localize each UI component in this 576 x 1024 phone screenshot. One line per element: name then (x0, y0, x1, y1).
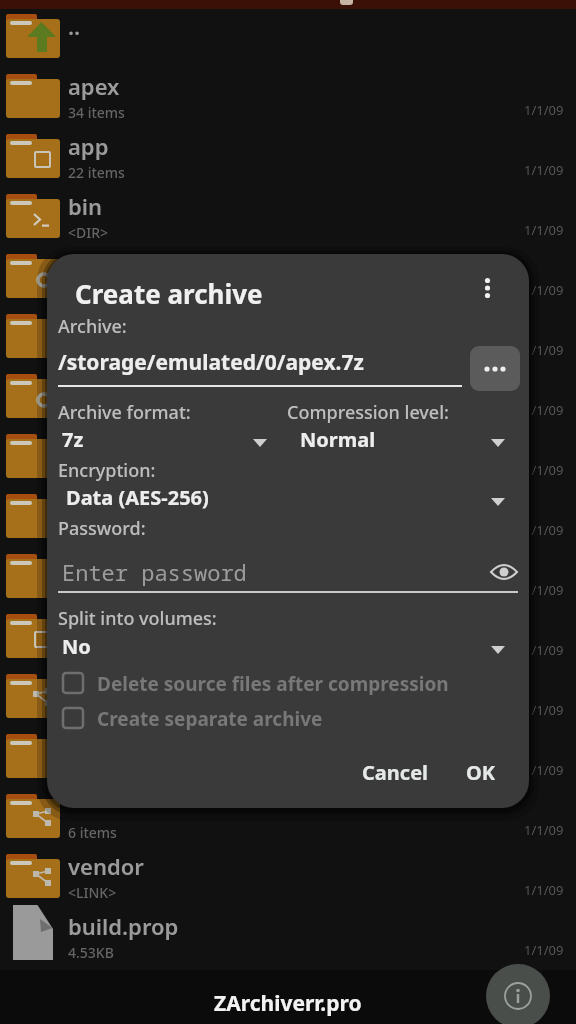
button[interactable] (474, 268, 506, 312)
button[interactable]: sdcard (0, 610, 576, 670)
staticText: proc (68, 551, 116, 581)
button[interactable] (58, 629, 518, 665)
button[interactable]: .. (0, 10, 576, 70)
staticText: <DIR> (68, 583, 109, 602)
staticText: Delete source files after compression (97, 671, 449, 695)
staticText: 1/1/09 (524, 581, 564, 599)
staticText: <DIR> (68, 343, 109, 362)
staticText: Cancel (362, 759, 429, 786)
staticText: apex (68, 71, 120, 101)
staticText: Password: (58, 516, 146, 541)
button[interactable]: Cancel (343, 748, 447, 796)
staticText: <LINK> (68, 883, 117, 902)
button[interactable]: etc (0, 370, 576, 430)
staticText: 34 items (68, 103, 125, 122)
staticText: system_ext (68, 791, 188, 821)
staticText: Encryption: (58, 458, 156, 483)
staticText: 1/1/09 (524, 401, 564, 419)
button[interactable] (58, 422, 278, 458)
staticText: Split into volumes: (58, 606, 217, 631)
staticText: 1/1/09 (524, 461, 564, 479)
staticText: .. (68, 11, 81, 41)
staticText: 1/1/09 (524, 701, 564, 719)
staticText: <DIR> (68, 223, 109, 242)
staticText: Compression level: (287, 400, 449, 425)
staticText: 1/1/09 (524, 941, 564, 959)
staticText: <DIR> (68, 403, 109, 422)
button[interactable] (58, 480, 518, 516)
staticText: Archive format: (58, 400, 191, 425)
button[interactable]: dev (0, 310, 576, 370)
staticText: <DIR> (68, 523, 109, 542)
button[interactable]: apex (0, 70, 576, 130)
staticText: sys (68, 671, 102, 701)
button[interactable]: Enter password (62, 557, 247, 587)
staticText: app (68, 131, 109, 161)
staticText: dev (68, 311, 107, 341)
button[interactable]: Normal (300, 426, 376, 453)
button[interactable]: mnt (0, 430, 576, 490)
button[interactable]: app (0, 130, 576, 190)
staticText: 1/1/09 (524, 881, 564, 899)
button[interactable]: sys (0, 670, 576, 730)
staticText: data (68, 251, 117, 281)
staticText: 1/1/09 (524, 281, 564, 299)
button[interactable] (293, 422, 518, 458)
button[interactable]: 7z (62, 426, 84, 453)
staticText: 6 items (68, 823, 117, 842)
button[interactable]: system (0, 730, 576, 790)
staticText: 1/1/09 (524, 341, 564, 359)
button[interactable]: ZArchiverr.pro (0, 970, 576, 1024)
staticText: sdcard (68, 611, 140, 641)
staticText: <DIR> (68, 703, 109, 722)
button[interactable]: Create separate archive (62, 706, 323, 730)
button[interactable]: system_ext (0, 790, 576, 850)
staticText: OK (466, 759, 496, 786)
staticText: 1/1/09 (524, 221, 564, 239)
staticText: etc (68, 371, 101, 401)
button[interactable]: Data (AES-256) (66, 484, 209, 511)
staticText: vendor (68, 851, 144, 881)
button[interactable]: build.prop (0, 910, 576, 970)
button[interactable]: proc (0, 550, 576, 610)
staticText: odm (68, 491, 117, 521)
staticText: <DIR> (68, 463, 109, 482)
staticText: <DIR> (68, 643, 109, 662)
button[interactable]: OK (445, 748, 517, 796)
staticText: <DIR> (68, 283, 109, 302)
button[interactable]: No (62, 633, 91, 660)
staticText: 1/1/09 (524, 521, 564, 539)
staticText: 1/1/09 (524, 101, 564, 119)
staticText: 1/1/09 (524, 161, 564, 179)
button[interactable] (486, 964, 550, 1024)
staticText: mnt (68, 431, 113, 461)
staticText: 1/1/09 (524, 761, 564, 779)
button[interactable]: Delete source files after compression (62, 671, 449, 695)
staticText: /storage/emulated/0/apex.7z (58, 348, 364, 377)
staticText: Create separate archive (97, 706, 323, 730)
staticText: 4.53KB (68, 943, 114, 962)
button[interactable] (470, 346, 520, 391)
button[interactable]: data (0, 250, 576, 310)
staticText: Archive: (58, 314, 127, 339)
staticText: 1/1/09 (524, 641, 564, 659)
button[interactable] (483, 552, 525, 592)
staticText: bin (68, 191, 103, 221)
button[interactable]: bin (0, 190, 576, 250)
button[interactable]: odm (0, 490, 576, 550)
staticText: ZArchiverr.pro (214, 989, 362, 1018)
staticText: build.prop (68, 911, 179, 941)
staticText: 1/1/09 (524, 821, 564, 839)
button[interactable]: vendor (0, 850, 576, 910)
staticText: Create archive (75, 276, 263, 311)
staticText: 22 items (68, 163, 125, 182)
